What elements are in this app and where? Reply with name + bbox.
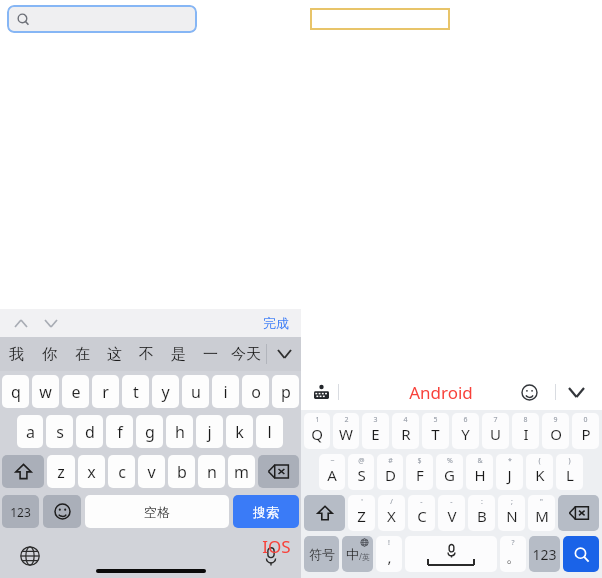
button[interactable]: @ xyxy=(348,454,374,490)
staticText: 今天 xyxy=(231,345,261,364)
button[interactable]: v xyxy=(138,455,165,488)
button[interactable]: 今天 xyxy=(226,337,266,371)
staticText: a xyxy=(26,421,35,443)
button[interactable]: g xyxy=(136,415,163,448)
button[interactable]: " xyxy=(528,495,555,531)
button[interactable]: s xyxy=(46,415,73,448)
button[interactable] xyxy=(7,5,197,33)
button[interactable]: o xyxy=(242,375,269,408)
button[interactable]: - xyxy=(438,495,465,531)
button[interactable]: 在 xyxy=(66,337,98,371)
button[interactable]: 9 xyxy=(542,413,569,449)
button[interactable]: u xyxy=(182,375,209,408)
staticText: * xyxy=(508,456,512,466)
button[interactable]: % xyxy=(436,454,463,490)
staticText: 你 xyxy=(42,345,57,364)
button[interactable]: 0 xyxy=(572,413,599,449)
staticText: 4 xyxy=(403,415,408,425)
button[interactable]: 8 xyxy=(512,413,539,449)
button[interactable]: q xyxy=(2,375,29,408)
button[interactable]: a xyxy=(17,415,43,448)
button[interactable]: 这 xyxy=(98,337,130,371)
button[interactable]: l xyxy=(256,415,283,448)
staticText: ? xyxy=(511,538,515,548)
button[interactable]: Shift xyxy=(304,495,345,531)
button[interactable]: Backspace xyxy=(258,455,299,488)
button[interactable]: : xyxy=(468,495,495,531)
staticText: x xyxy=(87,461,96,483)
button[interactable]: p xyxy=(272,375,299,408)
button[interactable]: Emoji xyxy=(518,381,540,403)
button[interactable]: e xyxy=(62,375,89,408)
staticText: 7 xyxy=(493,415,498,425)
button[interactable]: # xyxy=(377,454,403,490)
button[interactable]: * xyxy=(496,454,523,490)
button[interactable]: 中 xyxy=(342,536,373,572)
button[interactable] xyxy=(310,8,450,30)
button[interactable]: h xyxy=(166,415,193,448)
button[interactable]: 6 xyxy=(452,413,479,449)
button[interactable]: Search xyxy=(563,536,599,572)
button[interactable]: b xyxy=(168,455,195,488)
button[interactable]: t xyxy=(122,375,149,408)
button[interactable]: c xyxy=(108,455,135,488)
button[interactable]: 7 xyxy=(482,413,509,449)
button[interactable]: ) xyxy=(556,454,583,490)
button[interactable]: Backspace xyxy=(558,495,599,531)
button[interactable]: Keyboard settings xyxy=(310,381,332,403)
button[interactable]: 符号 xyxy=(304,536,339,572)
button[interactable]: i xyxy=(212,375,239,408)
button[interactable]: 2 xyxy=(333,413,359,449)
button[interactable]: 搜索 xyxy=(233,495,299,528)
button[interactable]: ( xyxy=(526,454,553,490)
button[interactable]: 4 xyxy=(392,413,419,449)
button[interactable]: Emoji xyxy=(43,495,81,528)
button[interactable]: Voice input xyxy=(258,543,284,569)
button[interactable]: Previous xyxy=(10,312,32,334)
button[interactable]: ' xyxy=(348,495,375,531)
button[interactable]: z xyxy=(47,455,75,488)
button[interactable]: k xyxy=(226,415,253,448)
button[interactable]: r xyxy=(92,375,119,408)
button[interactable]: f xyxy=(106,415,133,448)
button[interactable]: - xyxy=(408,495,435,531)
staticText: K xyxy=(535,465,545,485)
button[interactable]: ? xyxy=(500,536,526,572)
button[interactable]: Hide keyboard xyxy=(564,380,588,404)
staticText: 搜索 xyxy=(253,504,279,520)
button[interactable]: w xyxy=(32,375,59,408)
button[interactable]: ; xyxy=(498,495,525,531)
button[interactable]: Next xyxy=(40,312,62,334)
button[interactable]: Switch language xyxy=(17,543,43,569)
button[interactable]: ~ xyxy=(319,454,345,490)
button[interactable]: $ xyxy=(406,454,433,490)
staticText: 6 xyxy=(463,415,468,425)
button[interactable]: 1 xyxy=(304,413,330,449)
button[interactable]: / xyxy=(378,495,405,531)
button[interactable]: 不 xyxy=(130,337,162,371)
button[interactable]: j xyxy=(196,415,223,448)
button[interactable]: d xyxy=(76,415,103,448)
button[interactable]: 你 xyxy=(33,337,66,371)
button[interactable]: 是 xyxy=(162,337,194,371)
staticText: Q xyxy=(311,424,323,444)
button[interactable]: n xyxy=(198,455,225,488)
button[interactable]: x xyxy=(78,455,105,488)
button[interactable]: 一 xyxy=(194,337,226,371)
button[interactable]: ! xyxy=(376,536,402,572)
button[interactable]: 我 xyxy=(0,337,33,371)
button[interactable]: m xyxy=(228,455,255,488)
button[interactable]: 123 xyxy=(529,536,560,572)
button[interactable]: 3 xyxy=(362,413,389,449)
button[interactable]: Shift xyxy=(2,455,44,488)
button[interactable]: & xyxy=(466,454,493,490)
button[interactable]: 完成 xyxy=(263,315,289,331)
button[interactable]: y xyxy=(152,375,179,408)
staticText: Android xyxy=(409,381,473,404)
button[interactable]: 空格 xyxy=(85,495,229,528)
button[interactable]: Expand candidates xyxy=(267,337,301,371)
button[interactable] xyxy=(405,536,497,572)
button[interactable]: 123 xyxy=(2,495,39,528)
button[interactable]: 5 xyxy=(422,413,449,449)
staticText: J xyxy=(507,465,512,485)
